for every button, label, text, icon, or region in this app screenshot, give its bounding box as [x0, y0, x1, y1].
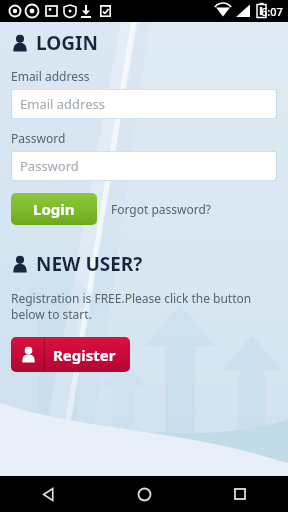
button[interactable]: Back [0, 476, 96, 512]
staticText: Registration is FREE.Please click the bu… [11, 290, 252, 323]
button[interactable]: Forgot password? [109, 197, 214, 221]
staticText: 6:07 [261, 4, 283, 19]
staticText: Login [33, 199, 75, 219]
staticText: Register [53, 345, 116, 365]
button[interactable]: Register [11, 337, 130, 372]
staticText: Forgot password? [111, 201, 212, 217]
staticText: Password [11, 130, 66, 146]
staticText: Email address [11, 68, 90, 84]
button[interactable]: Email address [11, 89, 277, 119]
staticText: NEW USER? [36, 251, 143, 277]
button[interactable]: Recent apps [192, 476, 288, 512]
button[interactable]: Home [96, 476, 192, 512]
staticText: Email address [20, 95, 105, 113]
button[interactable]: Login [11, 193, 97, 225]
staticText: Password [20, 157, 79, 175]
staticText: LOGIN [36, 30, 98, 56]
button[interactable]: Password [11, 151, 277, 181]
